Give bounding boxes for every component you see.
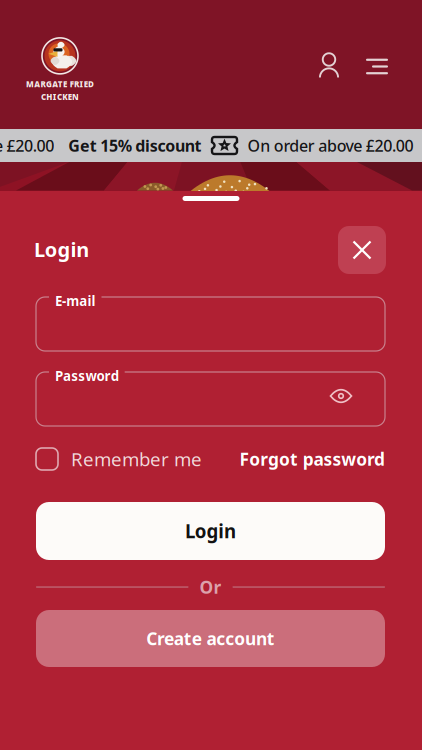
button[interactable]: Close <box>338 226 386 274</box>
staticText: Password <box>55 367 119 385</box>
button[interactable]: Remember me <box>36 447 202 471</box>
staticText: Or <box>199 575 221 598</box>
staticText: Remember me <box>71 447 202 471</box>
staticText: MARGATE FRIED <box>26 79 94 89</box>
staticText: Login <box>34 236 89 263</box>
button[interactable]: Menu <box>354 43 400 89</box>
staticText: e £20.00 <box>0 135 54 156</box>
staticText: Forgot password <box>239 447 385 470</box>
staticText: Create account <box>146 627 275 650</box>
staticText: E-mail <box>55 292 95 310</box>
staticText: On order above £20.00 <box>247 135 413 156</box>
button[interactable]: Account <box>306 43 352 89</box>
staticText: Login <box>185 519 236 543</box>
button[interactable]: Forgot password <box>239 447 385 470</box>
button[interactable]: Login <box>36 502 385 560</box>
button[interactable]: Create account <box>36 610 385 667</box>
staticText: CHICKEN <box>41 91 79 102</box>
staticText: Get 15% discount <box>68 135 201 156</box>
